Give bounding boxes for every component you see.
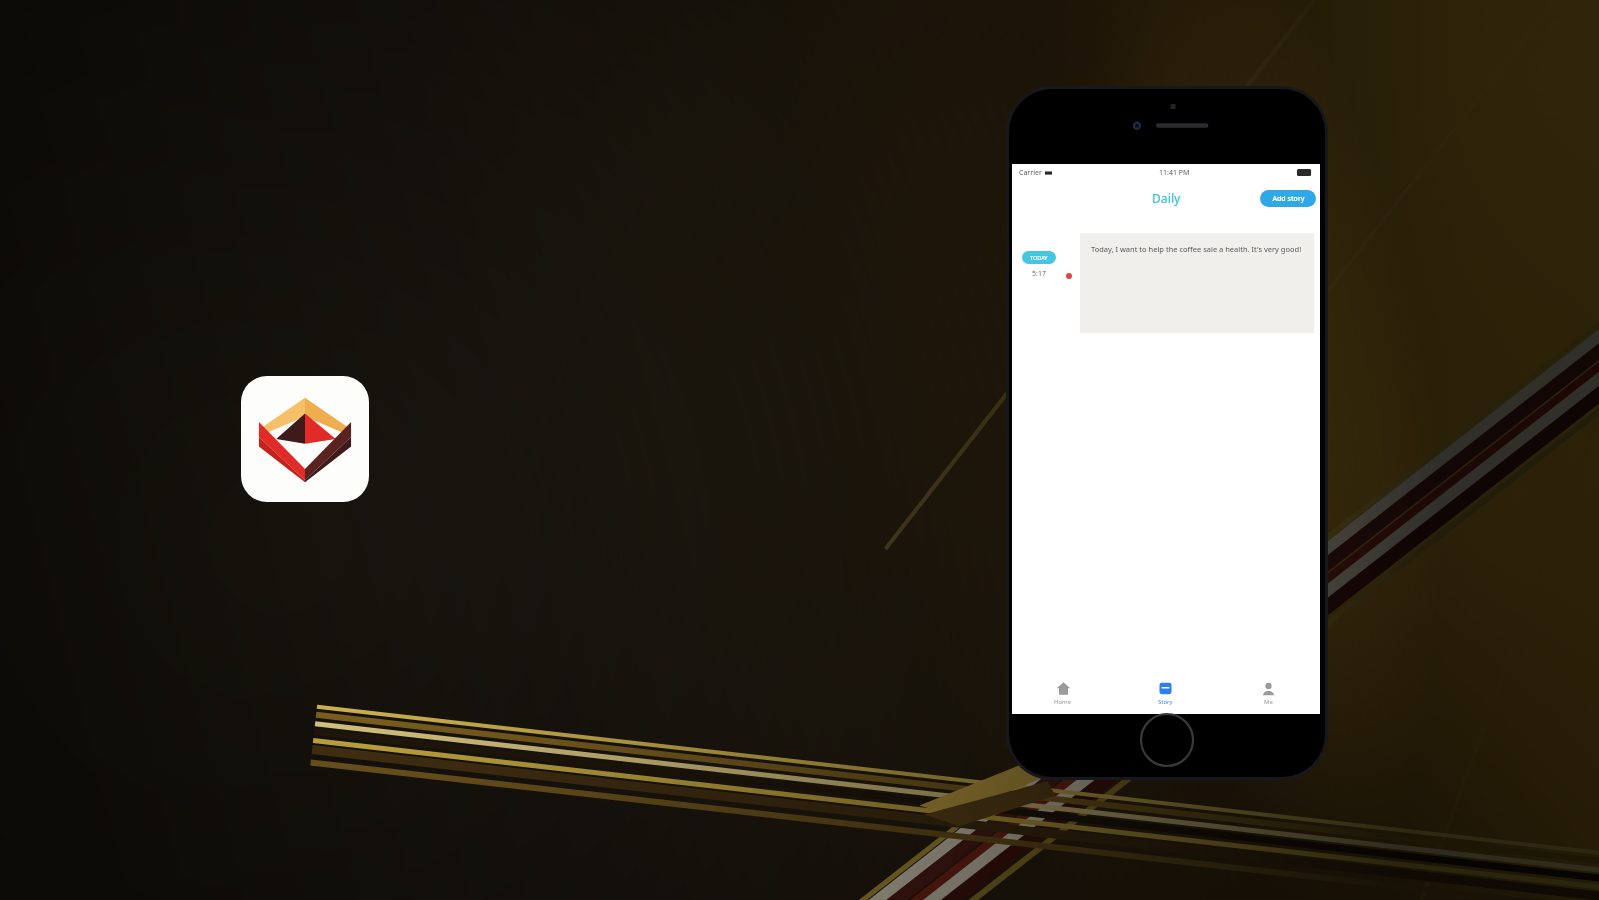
staticText: 11:41 PM bbox=[1159, 168, 1190, 178]
button[interactable]: Today, I want to help the coffee sale a … bbox=[1080, 233, 1314, 333]
staticText: Me bbox=[1264, 698, 1273, 706]
staticText: Add story bbox=[1272, 194, 1305, 204]
button[interactable]: Daily bbox=[1146, 187, 1187, 209]
button[interactable]: App icon bbox=[241, 376, 369, 502]
staticText: Daily bbox=[1152, 190, 1181, 206]
button[interactable]: Story bbox=[1114, 681, 1217, 706]
staticText: Carrier bbox=[1019, 168, 1042, 178]
staticText: Home bbox=[1054, 698, 1072, 706]
staticText: 5:17 bbox=[1032, 269, 1046, 279]
button[interactable]: Add story bbox=[1260, 190, 1316, 207]
staticText: Today, I want to help the coffee sale a … bbox=[1091, 244, 1302, 254]
staticText: TODAY bbox=[1030, 254, 1048, 261]
button[interactable]: Home bbox=[1012, 681, 1114, 706]
staticText: Story bbox=[1158, 698, 1173, 706]
button[interactable]: Home button bbox=[1139, 712, 1195, 768]
button[interactable]: TODAY bbox=[1012, 233, 1320, 333]
button[interactable]: Me bbox=[1217, 681, 1320, 706]
